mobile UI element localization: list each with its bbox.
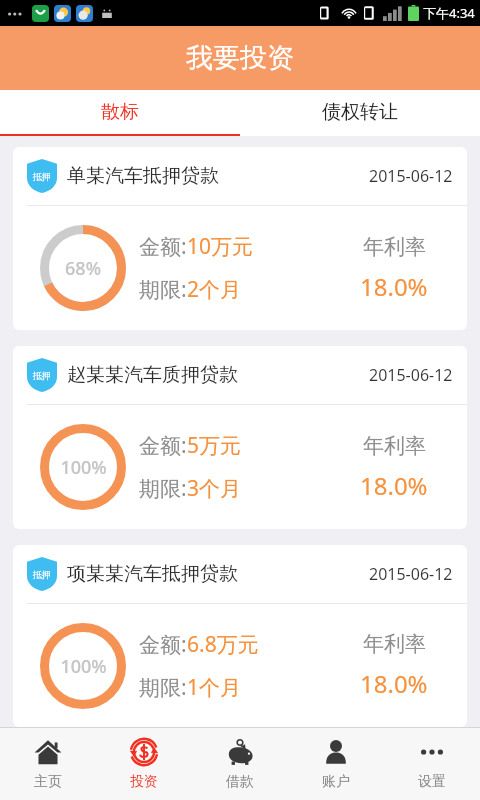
button[interactable]: 账户	[288, 728, 384, 800]
staticText: 年利率	[363, 234, 426, 260]
other: 借款	[226, 738, 254, 766]
staticText: 设置	[418, 773, 446, 791]
staticText: 借款	[226, 773, 254, 791]
staticText: 抵押	[33, 569, 51, 580]
staticText: 年利率	[363, 433, 426, 459]
button[interactable]: 投资	[96, 728, 192, 800]
other: 主页	[34, 738, 62, 766]
button[interactable]: 设置	[384, 728, 480, 800]
button[interactable]: 抵押	[13, 545, 467, 727]
staticText: 3个月	[187, 474, 242, 503]
staticText: 2个月	[187, 275, 242, 304]
staticText: 债权转让	[322, 100, 398, 124]
staticText: 68%	[65, 256, 101, 281]
button[interactable]: 抵押	[13, 346, 467, 529]
staticText: 6.8万元	[187, 630, 259, 659]
staticText: 期限:	[139, 275, 187, 304]
staticText: 下午4:34	[423, 4, 475, 22]
staticText: 100%	[60, 455, 107, 480]
other: 投资	[130, 738, 158, 766]
staticText: 18.0%	[360, 469, 428, 502]
button[interactable]: 主页	[0, 728, 96, 800]
staticText: 单某汽车抵押贷款	[67, 164, 219, 188]
staticText: 年利率	[363, 631, 426, 657]
staticText: 抵押	[33, 370, 51, 381]
staticText: 10万元	[187, 232, 254, 261]
button[interactable]: 债权转让	[240, 90, 480, 134]
staticText: 100%	[60, 654, 107, 679]
staticText: 投资	[130, 773, 158, 791]
button[interactable]: 抵押	[13, 147, 467, 330]
staticText: 金额:	[139, 431, 187, 460]
other: 账户	[323, 739, 349, 765]
staticText: 散标	[101, 100, 139, 124]
staticText: 主页	[34, 773, 62, 791]
button[interactable]: 借款	[192, 728, 288, 800]
staticText: 金额:	[139, 232, 187, 261]
staticText: 18.0%	[360, 667, 428, 700]
other: 设置	[418, 738, 446, 766]
button[interactable]: 散标	[0, 90, 240, 134]
staticText: 2015-06-12	[369, 364, 453, 386]
staticText: 18.0%	[360, 270, 428, 303]
staticText: 5万元	[187, 431, 242, 460]
staticText: 赵某某汽车质押贷款	[67, 363, 238, 387]
staticText: 项某某汽车抵押贷款	[67, 562, 238, 586]
staticText: 我要投资	[186, 41, 294, 75]
staticText: 2015-06-12	[369, 165, 453, 187]
staticText: 2015-06-12	[369, 563, 453, 585]
staticText: 抵押	[33, 171, 51, 182]
staticText: 期限:	[139, 673, 187, 702]
staticText: 期限:	[139, 474, 187, 503]
staticText: 1个月	[187, 673, 242, 702]
staticText: 账户	[322, 773, 350, 791]
staticText: 金额:	[139, 630, 187, 659]
